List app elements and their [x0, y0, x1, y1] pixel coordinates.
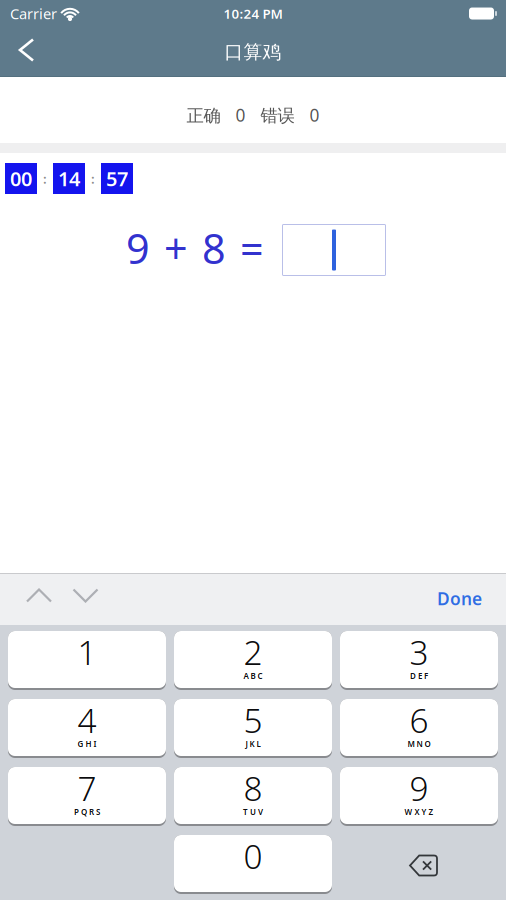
button[interactable]: 1: [8, 631, 166, 690]
staticText: J K L: [245, 739, 260, 749]
staticText: =: [240, 221, 264, 275]
button[interactable]: 9: [340, 767, 498, 826]
staticText: 口算鸡: [224, 40, 281, 63]
button[interactable]: [67, 583, 103, 607]
button[interactable]: 7: [8, 767, 166, 826]
staticText: :: [91, 170, 95, 187]
staticText: 5: [243, 698, 262, 742]
staticText: 8: [202, 221, 226, 275]
staticText: 3: [409, 630, 428, 674]
staticText: 14: [58, 165, 80, 192]
staticText: G H I: [77, 739, 96, 749]
staticText: 2: [243, 630, 262, 674]
button[interactable]: [340, 835, 498, 894]
button[interactable]: 5: [174, 699, 332, 758]
button[interactable]: 2: [174, 631, 332, 690]
button[interactable]: 3: [340, 631, 498, 690]
button[interactable]: 4: [8, 699, 166, 758]
staticText: 8: [243, 766, 262, 810]
staticText: D E F: [410, 671, 428, 681]
button[interactable]: Done: [437, 574, 506, 621]
staticText: W X Y Z: [404, 807, 433, 817]
staticText: +: [164, 221, 188, 275]
staticText: 1: [77, 630, 96, 674]
button[interactable]: 6: [340, 699, 498, 758]
staticText: 正确 0 错误 0: [186, 103, 319, 126]
button[interactable]: [0, 27, 33, 76]
staticText: 10:24 PM: [223, 5, 282, 22]
staticText: P Q R S: [74, 807, 100, 817]
button[interactable]: [282, 224, 386, 276]
staticText: 57: [106, 165, 128, 192]
staticText: M N O: [407, 739, 430, 749]
button[interactable]: 0: [174, 835, 332, 894]
staticText: 6: [409, 698, 428, 742]
staticText: 4: [77, 698, 96, 742]
staticText: A B C: [243, 671, 262, 681]
staticText: 7: [77, 766, 96, 810]
button[interactable]: 8: [174, 767, 332, 826]
staticText: 9: [409, 766, 428, 810]
staticText: 00: [10, 165, 32, 192]
staticText: 9: [126, 221, 150, 275]
button[interactable]: [21, 583, 57, 607]
staticText: :: [43, 170, 47, 187]
staticText: Done: [437, 587, 482, 610]
staticText: 0: [243, 834, 262, 878]
staticText: T U V: [243, 807, 263, 817]
staticText: Carrier: [10, 4, 57, 23]
